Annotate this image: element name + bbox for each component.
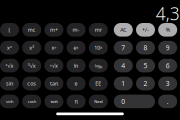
staticText: . [167, 97, 169, 106]
button[interactable]: π [67, 95, 86, 108]
button[interactable]: x³ [22, 41, 41, 54]
staticText: eˣ [74, 44, 79, 51]
button[interactable]: ²√x [0, 59, 19, 72]
button[interactable]: % [158, 23, 177, 37]
staticText: 5 [143, 61, 147, 70]
staticText: cos [27, 80, 36, 87]
staticText: log₁₀ [95, 63, 102, 68]
staticText: % [166, 26, 170, 33]
button[interactable]: EE [89, 77, 108, 90]
staticText: 7 [121, 43, 125, 52]
button[interactable]: AC [114, 23, 133, 37]
button[interactable]: tan [44, 77, 63, 90]
button[interactable]: sinh [0, 95, 19, 108]
button[interactable]: m+ [44, 23, 63, 37]
staticText: ²√x [5, 62, 13, 69]
button[interactable]: 3 [158, 77, 177, 90]
staticText: ( [8, 26, 10, 33]
staticText: 4 [121, 61, 125, 70]
staticText: ³√x [28, 62, 36, 69]
staticText: x² [7, 44, 12, 51]
button[interactable]: mc [22, 23, 41, 37]
staticText: EE [95, 80, 101, 87]
button[interactable]: +/- [136, 23, 155, 37]
staticText: 6 [166, 61, 170, 70]
button[interactable]: 0 [114, 95, 155, 108]
button[interactable]: 2 [136, 77, 155, 90]
staticText: 4,3 [156, 2, 180, 25]
staticText: 3 [166, 79, 170, 88]
staticText: π [75, 98, 78, 105]
staticText: 9 [166, 43, 170, 52]
button[interactable]: xʸ [44, 41, 63, 54]
staticText: cosh [28, 99, 36, 104]
button[interactable]: 7 [114, 41, 133, 54]
staticText: 0 [121, 97, 125, 106]
staticText: AC [120, 26, 126, 33]
staticText: 2 [143, 79, 147, 88]
button[interactable]: 9 [158, 41, 177, 54]
button[interactable]: Rand [89, 95, 108, 108]
staticText: ʸ√x [50, 62, 58, 69]
staticText: m- [73, 26, 80, 33]
staticText: 1 [121, 79, 125, 88]
button[interactable]: 8 [136, 41, 155, 54]
button[interactable]: 1 [114, 77, 133, 90]
button[interactable]: cosh [22, 95, 41, 108]
staticText: e [75, 80, 78, 87]
button[interactable]: ln [67, 59, 86, 72]
button[interactable]: mr [89, 23, 108, 37]
button[interactable]: sin [0, 77, 19, 90]
button[interactable]: 6 [158, 59, 177, 72]
staticText: mr [95, 26, 102, 33]
button[interactable]: log₁₀ [89, 59, 108, 72]
button[interactable]: 10ˣ [89, 41, 108, 54]
staticText: m+ [50, 26, 58, 33]
staticText: sin [6, 80, 13, 87]
staticText: sinh [6, 99, 13, 104]
button[interactable]: . [158, 95, 177, 108]
staticText: Rand [94, 99, 102, 104]
button[interactable]: 4 [114, 59, 133, 72]
button[interactable]: ( [0, 23, 19, 37]
staticText: 8 [143, 43, 147, 52]
staticText: x³ [29, 44, 34, 51]
button[interactable]: ʸ√x [44, 59, 63, 72]
button[interactable]: eˣ [67, 41, 86, 54]
button[interactable]: cos [22, 77, 41, 90]
button[interactable]: ³√x [22, 59, 41, 72]
button[interactable]: m- [67, 23, 86, 37]
button[interactable]: tanh [44, 95, 63, 108]
staticText: 10ˣ [94, 44, 102, 51]
staticText: mc [28, 26, 36, 33]
staticText: tanh [50, 99, 57, 104]
staticText: xʸ [51, 44, 56, 51]
button[interactable]: x² [0, 41, 19, 54]
button[interactable]: e [67, 77, 86, 90]
staticText: ln [74, 62, 78, 69]
staticText: tan [50, 80, 58, 87]
staticText: +/- [142, 26, 149, 33]
button[interactable]: 5 [136, 59, 155, 72]
